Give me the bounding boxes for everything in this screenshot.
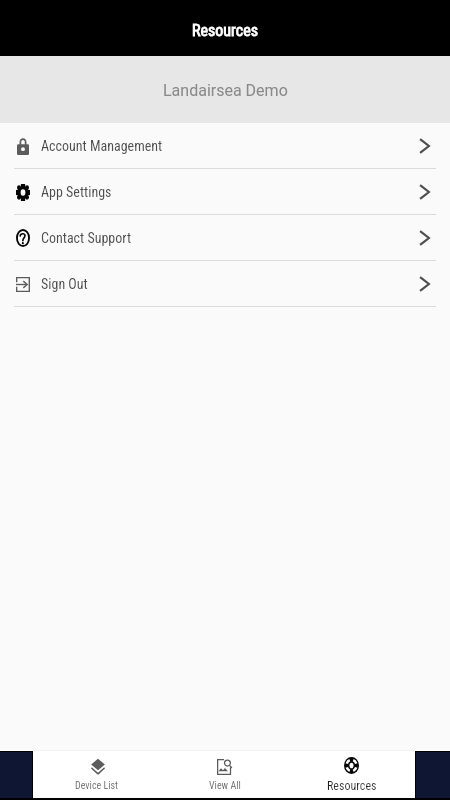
button[interactable]: Sign Out [0,261,450,307]
staticText: Resources [192,21,258,40]
staticText: Landairsea Demo [163,81,288,100]
button[interactable]: Contact Support [0,215,450,261]
staticText: Account Management [41,138,163,154]
button[interactable]: App Settings [0,169,450,215]
button[interactable]: Device List [33,751,161,798]
staticText: Sign Out [41,276,88,292]
staticText: App Settings [41,184,112,200]
staticText: Resources [327,779,377,793]
staticText: View All [209,780,241,792]
button[interactable]: Account Management [0,123,450,169]
button[interactable]: Resources [288,751,415,798]
staticText: Device List [75,780,119,792]
staticText: Contact Support [41,230,132,246]
button[interactable]: View All [161,751,288,798]
